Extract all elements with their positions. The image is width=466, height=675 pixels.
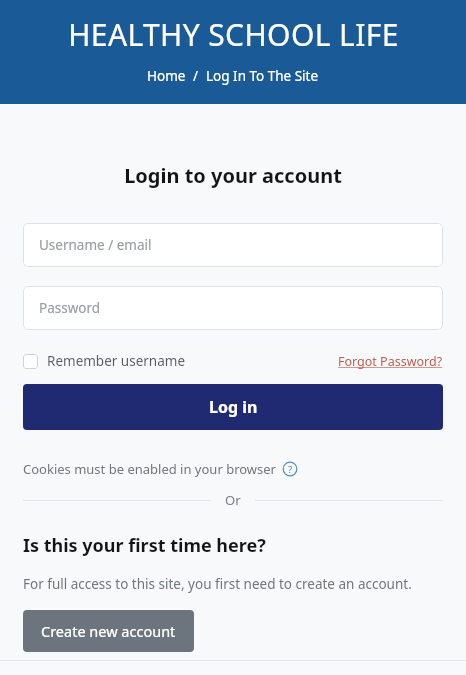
staticText: Create new account <box>41 621 176 641</box>
staticText: / <box>186 67 206 85</box>
button[interactable]: Home <box>147 67 186 85</box>
button[interactable]: Remember username <box>23 352 186 370</box>
staticText: Password <box>39 299 101 317</box>
staticText: Log In To The Site <box>206 67 319 85</box>
button[interactable]: Log in <box>23 384 443 430</box>
staticText: HEALTHY SCHOOL LIFE <box>68 14 399 55</box>
staticText: Log in <box>209 396 258 418</box>
staticText: Login to your account <box>23 162 443 189</box>
button[interactable]: Create new account <box>23 610 194 652</box>
button[interactable]: Forgot Password? <box>338 353 443 370</box>
staticText: Is this your first time here? <box>23 533 266 558</box>
button[interactable]: Password <box>23 286 443 330</box>
staticText: Username / email <box>39 236 152 254</box>
staticText: Home <box>147 67 186 85</box>
staticText: Cookies must be enabled in your browser <box>23 460 276 478</box>
staticText: Or <box>225 491 241 509</box>
staticText: Forgot Password? <box>338 353 443 370</box>
staticText: ? <box>288 463 293 476</box>
button[interactable]: Help about cookies <box>282 461 298 477</box>
button[interactable]: Username / email <box>23 223 443 267</box>
staticText: For full access to this site, you first … <box>23 575 412 593</box>
staticText: Remember username <box>47 352 186 370</box>
